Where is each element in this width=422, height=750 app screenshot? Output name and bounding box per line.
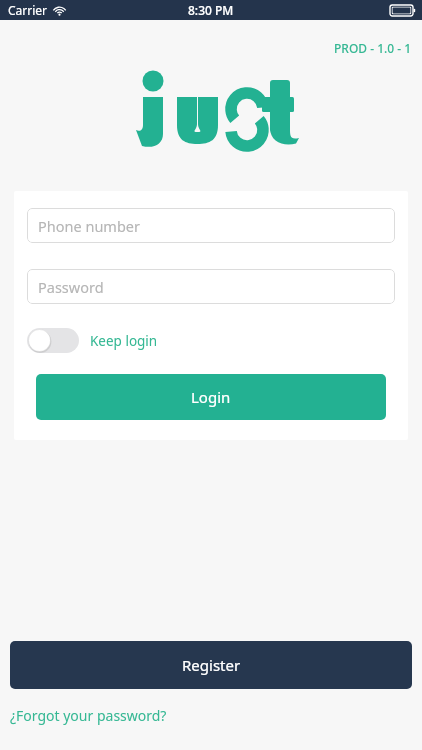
- button[interactable]: Register: [10, 641, 412, 689]
- staticText: Password: [38, 277, 104, 297]
- staticText: Keep login: [90, 332, 158, 350]
- staticText: PROD - 1.0 - 1: [334, 40, 412, 56]
- button[interactable]: ¿Forgot your password?: [10, 703, 167, 728]
- staticText: Phone number: [38, 216, 140, 236]
- staticText: Register: [182, 655, 241, 675]
- button[interactable]: Password: [27, 269, 395, 304]
- button[interactable]: Login: [36, 374, 386, 420]
- button[interactable]: Phone number: [27, 208, 395, 243]
- staticText: Carrier: [8, 2, 48, 18]
- staticText: ¿Forgot your password?: [10, 706, 167, 725]
- staticText: Login: [191, 387, 231, 407]
- staticText: 8:30 PM: [188, 2, 234, 18]
- button[interactable]: Keep login: [27, 325, 158, 356]
